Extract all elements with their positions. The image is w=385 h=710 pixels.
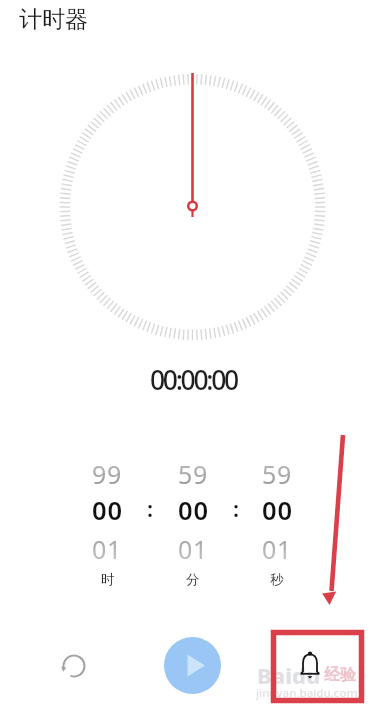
staticText: 59: [262, 457, 292, 491]
staticText: 00:00:00: [150, 362, 237, 398]
button[interactable]: [286, 639, 334, 687]
staticText: 经验: [324, 665, 356, 685]
staticText: 01: [92, 532, 122, 566]
button[interactable]: [50, 642, 98, 690]
button[interactable]: 00: [27, 486, 187, 534]
button[interactable]: 00: [197, 486, 357, 534]
staticText: 59: [178, 457, 208, 491]
staticText: 00: [92, 493, 123, 528]
staticText: 时: [101, 571, 115, 588]
staticText: 01: [178, 532, 208, 566]
staticText: 分: [186, 571, 200, 588]
staticText: 秒: [270, 571, 284, 588]
staticText: Baidu: [257, 660, 321, 686]
staticText: 00: [262, 493, 293, 528]
staticText: 计时器: [19, 5, 88, 33]
button[interactable]: 00: [113, 486, 273, 534]
staticText: 99: [92, 457, 122, 491]
staticText: 00: [178, 493, 209, 528]
staticText: :: [233, 493, 240, 523]
button[interactable]: 计时器: [19, 5, 91, 33]
button[interactable]: [164, 637, 221, 694]
staticText: :: [147, 493, 154, 523]
staticText: jingyan.baidu.com: [256, 685, 358, 701]
staticText: 01: [262, 532, 292, 566]
